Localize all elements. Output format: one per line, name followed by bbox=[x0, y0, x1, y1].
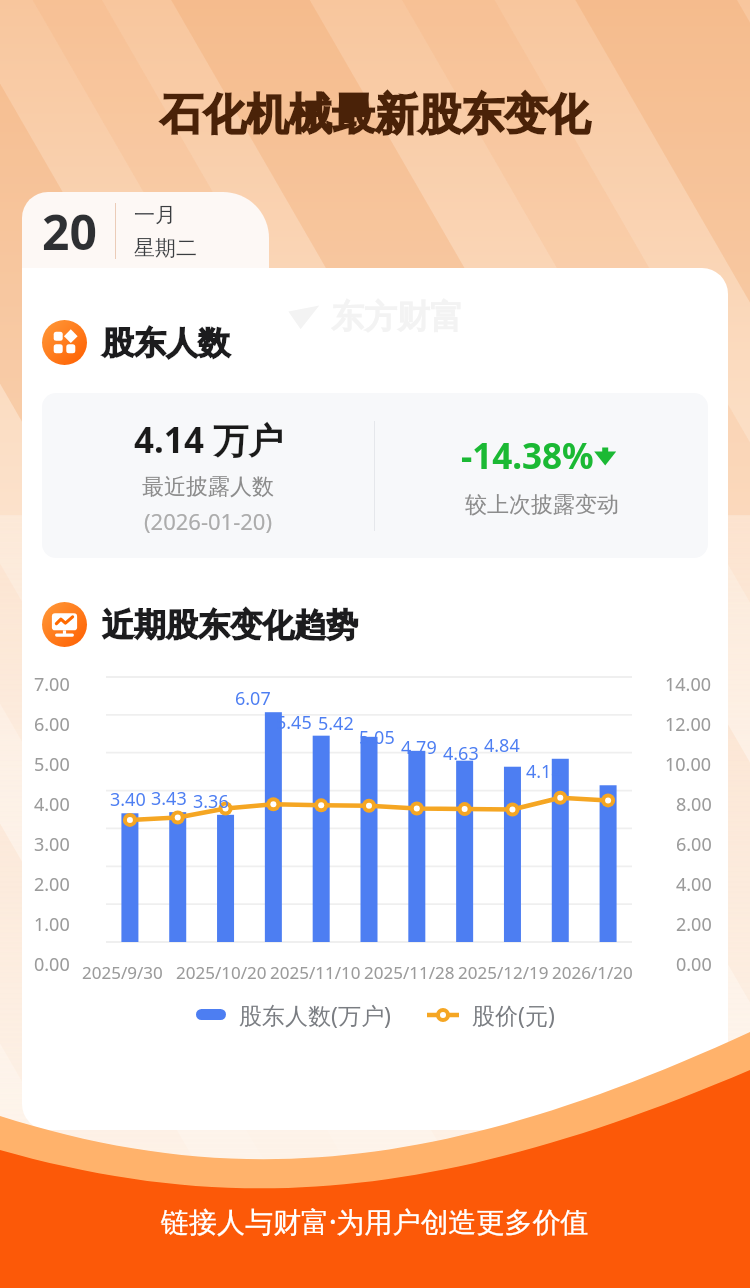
staticText: 最近披露人数 bbox=[142, 473, 274, 501]
staticText: 链接人与财富·为用户创造更多价值 bbox=[161, 1202, 589, 1240]
staticText: 4.00 bbox=[676, 872, 712, 897]
staticText: 4.84 bbox=[484, 733, 520, 758]
staticText: 1.00 bbox=[34, 912, 70, 937]
staticText: 12.00 bbox=[665, 712, 712, 737]
staticText: 5.05 bbox=[359, 725, 395, 750]
staticText: 4.14 bbox=[526, 759, 562, 784]
staticText: 6.00 bbox=[676, 832, 712, 857]
staticText: 2.00 bbox=[34, 872, 70, 897]
staticText: (2026-01-20) bbox=[144, 506, 273, 536]
staticText: 2025/11/10 bbox=[270, 961, 361, 984]
button[interactable]: 股东人数 bbox=[42, 320, 230, 365]
staticText: 石化机械最新股东变化 bbox=[160, 88, 590, 142]
staticText: 10.00 bbox=[665, 752, 712, 777]
staticText: 14.00 bbox=[665, 672, 712, 697]
staticText: 0.00 bbox=[676, 952, 712, 977]
staticText: 0.00 bbox=[34, 952, 70, 977]
staticText: 一月 bbox=[134, 202, 176, 228]
staticText: 股东人数(万户) bbox=[239, 999, 391, 1030]
staticText: 星期二 bbox=[134, 235, 197, 261]
staticText: 2025/12/19 bbox=[458, 961, 549, 984]
staticText: 3.43 bbox=[151, 786, 187, 811]
staticText: 3.36 bbox=[193, 789, 229, 814]
staticText: 4.00 bbox=[34, 792, 70, 817]
other: 股东人数 bbox=[42, 320, 87, 365]
staticText: 股东人数 bbox=[102, 323, 230, 363]
staticText: 4.63 bbox=[443, 741, 479, 766]
staticText: 2026/1/20 bbox=[552, 961, 633, 984]
staticText: 4.14 万户 bbox=[134, 416, 283, 464]
button[interactable]: 近期股东变化趋势 bbox=[42, 602, 358, 647]
button[interactable]: 4.14 万户 bbox=[42, 393, 708, 558]
staticText: 近期股东变化趋势 bbox=[102, 605, 358, 645]
staticText: 2025/9/30 bbox=[82, 961, 163, 984]
staticText: 3.00 bbox=[34, 832, 70, 857]
staticText: 8.00 bbox=[676, 792, 712, 817]
staticText: 6.00 bbox=[34, 712, 70, 737]
staticText: 较上次披露变动 bbox=[465, 491, 619, 519]
staticText: 4.79 bbox=[401, 735, 437, 760]
staticText: 3.40 bbox=[110, 787, 146, 812]
other: 近期股东变化趋势 bbox=[42, 602, 87, 647]
staticText: 6.07 bbox=[235, 686, 271, 711]
staticText: 7.00 bbox=[34, 672, 70, 697]
staticText: 东方财富 bbox=[331, 296, 463, 338]
staticText: 5.42 bbox=[318, 711, 354, 736]
staticText: 2.00 bbox=[676, 912, 712, 937]
staticText: 20 bbox=[42, 199, 97, 264]
staticText: 5.00 bbox=[34, 752, 70, 777]
staticText: -14.38% bbox=[461, 432, 594, 480]
staticText: 股价(元) bbox=[472, 999, 555, 1030]
staticText: 2025/10/20 bbox=[176, 961, 267, 984]
staticText: 5.45 bbox=[276, 710, 312, 735]
staticText: 2025/11/28 bbox=[364, 961, 455, 984]
